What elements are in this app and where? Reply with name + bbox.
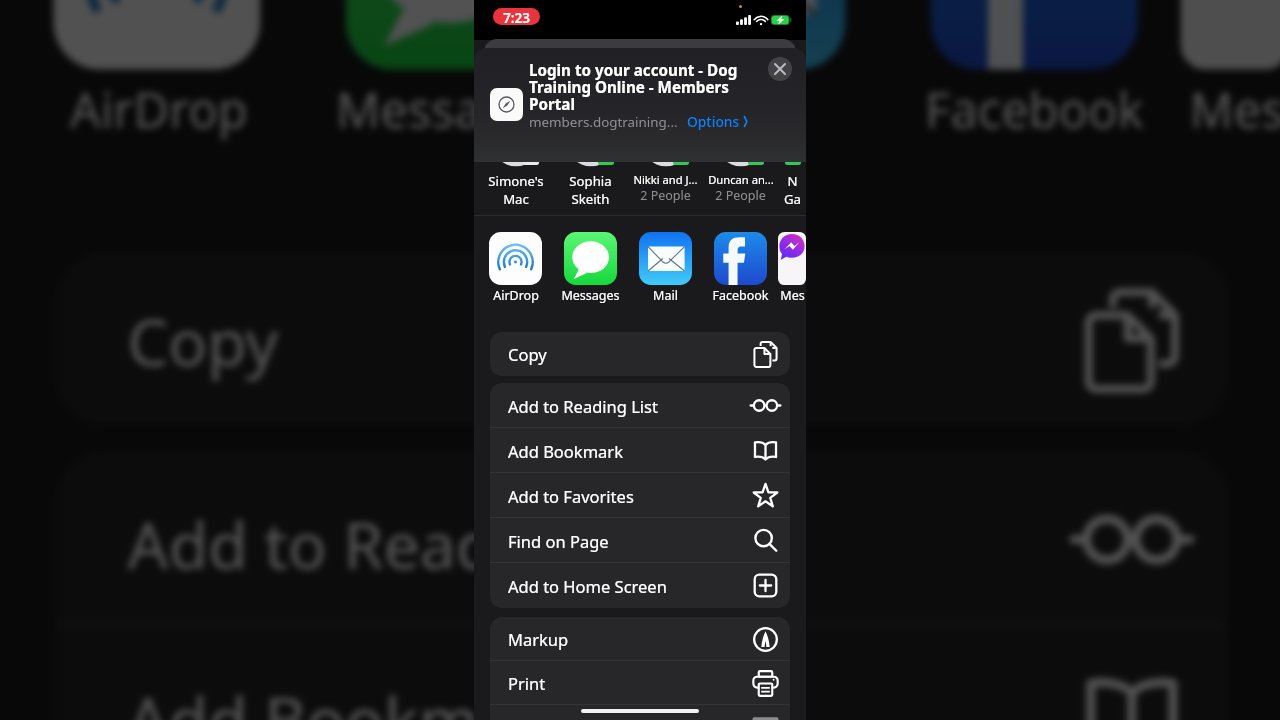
staticText: members.dogtraining... xyxy=(529,113,678,131)
staticText: Sophia xyxy=(569,172,612,190)
button[interactable]: Mail xyxy=(628,232,703,304)
staticText: AirDrop xyxy=(493,287,539,304)
staticText: Mac xyxy=(503,190,529,208)
staticText: Options xyxy=(687,112,740,131)
button[interactable]: Add to Home Screen xyxy=(490,563,790,608)
staticText: Messages xyxy=(334,77,564,144)
staticText: 7:23 xyxy=(503,8,531,25)
staticText: N xyxy=(787,172,798,190)
button[interactable]: Nikki and J... xyxy=(628,155,703,216)
button[interactable]: Copy xyxy=(57,253,1227,424)
button[interactable]: Add to Favorites xyxy=(490,473,790,518)
staticText: Skeith xyxy=(571,190,610,208)
staticText: Login to your account - Dog Training Onl… xyxy=(529,60,747,115)
staticText: Mes xyxy=(780,287,805,304)
staticText: 2 People xyxy=(640,187,691,204)
staticText: Add to Favorites xyxy=(508,485,634,507)
staticText: AirDrop xyxy=(69,77,248,144)
staticText: Add to Reading List xyxy=(128,498,713,584)
button[interactable]: AirDrop xyxy=(478,232,553,304)
button[interactable]: Duncan an... xyxy=(703,155,778,216)
staticText: 2 People xyxy=(715,187,766,204)
button[interactable]: Print xyxy=(490,661,790,705)
staticText: Messages xyxy=(561,287,620,304)
staticText: Mes xyxy=(1188,77,1280,144)
button[interactable]: Facebook xyxy=(888,0,1181,144)
button[interactable]: Add Bookmark xyxy=(57,627,1227,720)
button[interactable]: Save to Files xyxy=(490,705,790,720)
button[interactable]: Mail xyxy=(596,0,888,144)
button[interactable]: Sophia xyxy=(553,155,628,216)
staticText: Mail xyxy=(653,287,678,304)
button[interactable]: Markup xyxy=(490,617,790,661)
staticText: Mail xyxy=(693,77,791,144)
staticText: Copy xyxy=(128,296,280,381)
button[interactable]: Facebook xyxy=(703,232,778,304)
staticText: Facebook xyxy=(923,77,1145,144)
button[interactable]: Add to Reading List xyxy=(490,383,790,428)
staticText: Add Bookmark xyxy=(508,440,623,462)
button[interactable]: AirDrop xyxy=(11,0,303,144)
staticText: Add to Home Screen xyxy=(508,575,667,597)
staticText: Find on Page xyxy=(508,530,609,552)
button[interactable]: Simone's xyxy=(478,155,553,216)
staticText: Add to Reading List xyxy=(508,395,658,417)
staticText: Add Bookmark xyxy=(128,674,576,720)
staticText: Print xyxy=(508,672,546,694)
button[interactable]: Messages xyxy=(303,0,596,144)
button[interactable]: N xyxy=(778,155,806,216)
staticText: Copy xyxy=(508,343,547,365)
button[interactable]: Mes xyxy=(1181,0,1280,144)
staticText: Duncan an... xyxy=(708,172,774,187)
button[interactable]: Add Bookmark xyxy=(490,428,790,473)
button[interactable]: Find on Page xyxy=(490,518,790,563)
staticText: Ga xyxy=(784,190,801,208)
button[interactable]: Copy xyxy=(490,332,790,376)
staticText: Simone's xyxy=(488,172,544,190)
button[interactable]: Options xyxy=(687,112,747,131)
button[interactable]: Mes xyxy=(778,232,806,304)
staticText: Facebook xyxy=(712,287,769,304)
staticText: Nikki and J... xyxy=(633,172,698,187)
button[interactable]: Close xyxy=(768,57,792,81)
button[interactable]: Messages xyxy=(553,232,628,304)
staticText: Markup xyxy=(508,628,569,650)
button[interactable]: Add to Reading List xyxy=(57,452,1227,627)
